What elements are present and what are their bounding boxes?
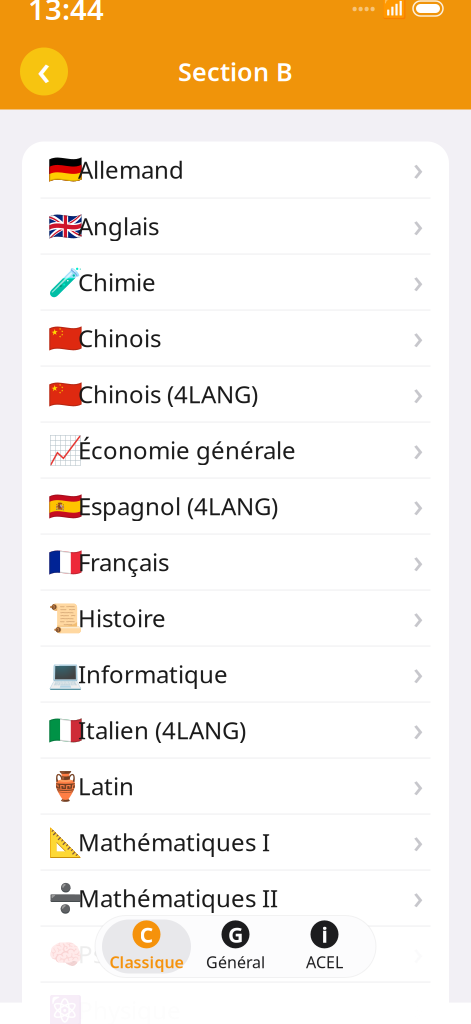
staticText: 💻: [48, 658, 83, 690]
staticText: 🇨🇳: [48, 378, 83, 410]
staticText: ›: [413, 483, 423, 526]
staticText: 📈: [48, 434, 83, 466]
staticText: 📐: [48, 826, 83, 858]
staticText: 📜: [48, 602, 83, 634]
staticText: Physique: [78, 994, 181, 1024]
button[interactable]: G: [191, 919, 280, 973]
staticText: ••••: [352, 0, 376, 18]
staticText: ›: [413, 147, 423, 189]
staticText: Français: [78, 546, 169, 578]
staticText: Section B: [178, 55, 293, 88]
staticText: i: [321, 920, 327, 948]
staticText: 🧠: [48, 938, 83, 970]
button[interactable]: Back: [18, 45, 70, 97]
button[interactable]: 💻: [22, 646, 449, 701]
staticText: Classique: [109, 951, 183, 973]
staticText: ›: [413, 707, 423, 750]
staticText: ›: [413, 427, 423, 470]
staticText: Économie générale: [78, 434, 296, 466]
button[interactable]: ➗: [22, 870, 449, 925]
staticText: ›: [413, 371, 423, 414]
staticText: Anglais: [78, 210, 159, 242]
staticText: Latin: [78, 770, 134, 802]
staticText: ›: [413, 203, 423, 246]
button[interactable]: 🇨🇳: [22, 366, 449, 421]
button[interactable]: 🇪🇸: [22, 478, 449, 533]
staticText: 🇨🇳: [48, 322, 83, 354]
staticText: ACEL: [306, 951, 343, 973]
staticText: Général: [206, 951, 265, 973]
staticText: Histoire: [78, 602, 166, 634]
button[interactable]: 🇨🇳: [22, 310, 449, 365]
staticText: ›: [413, 315, 423, 358]
button[interactable]: ⚛️: [22, 982, 449, 1024]
staticText: 13:44: [28, 0, 104, 28]
staticText: Psychologie: [78, 938, 214, 970]
staticText: Informatique: [78, 658, 228, 690]
staticText: ›: [413, 595, 423, 638]
staticText: Allemand: [78, 154, 184, 185]
staticText: 🇬🇧: [48, 210, 83, 242]
button[interactable]: 🇫🇷: [22, 534, 449, 589]
button[interactable]: 🧠: [22, 926, 449, 981]
button[interactable]: 🇮🇹: [22, 702, 449, 757]
staticText: 🇩🇪: [48, 153, 83, 185]
staticText: ›: [413, 651, 423, 694]
button[interactable]: 📐: [22, 814, 449, 869]
staticText: 🇮🇹: [48, 714, 83, 746]
staticText: Italien (4LANG): [78, 714, 246, 746]
button[interactable]: C: [102, 919, 191, 973]
button[interactable]: 🇬🇧: [22, 198, 449, 253]
staticText: C: [139, 920, 153, 948]
staticText: ›: [413, 763, 423, 806]
staticText: Chinois (4LANG): [78, 378, 258, 410]
button[interactable]: 📜: [22, 590, 449, 645]
staticText: ➗: [48, 882, 83, 914]
staticText: G: [228, 920, 243, 948]
button[interactable]: 🇩🇪: [22, 141, 449, 197]
staticText: Chinois: [78, 322, 161, 354]
staticText: 🧪: [48, 266, 83, 298]
staticText: ›: [413, 819, 423, 862]
button[interactable]: 🧪: [22, 254, 449, 309]
button[interactable]: 🏺: [22, 758, 449, 813]
staticText: ›: [413, 259, 423, 302]
staticText: 🇫🇷: [48, 546, 83, 578]
button[interactable]: i: [280, 919, 369, 973]
staticText: 🏺: [48, 770, 83, 802]
staticText: Chimie: [78, 266, 156, 298]
staticText: ⚛️: [48, 994, 83, 1024]
staticText: ‹: [37, 41, 51, 97]
button[interactable]: 📈: [22, 422, 449, 477]
staticText: ›: [413, 875, 423, 918]
staticText: ›: [413, 539, 423, 582]
staticText: Mathématiques I: [78, 826, 270, 858]
staticText: Mathématiques II: [78, 882, 278, 914]
staticText: Espagnol (4LANG): [78, 490, 278, 522]
staticText: 🇪🇸: [48, 490, 83, 522]
staticText: 📶: [382, 0, 407, 20]
